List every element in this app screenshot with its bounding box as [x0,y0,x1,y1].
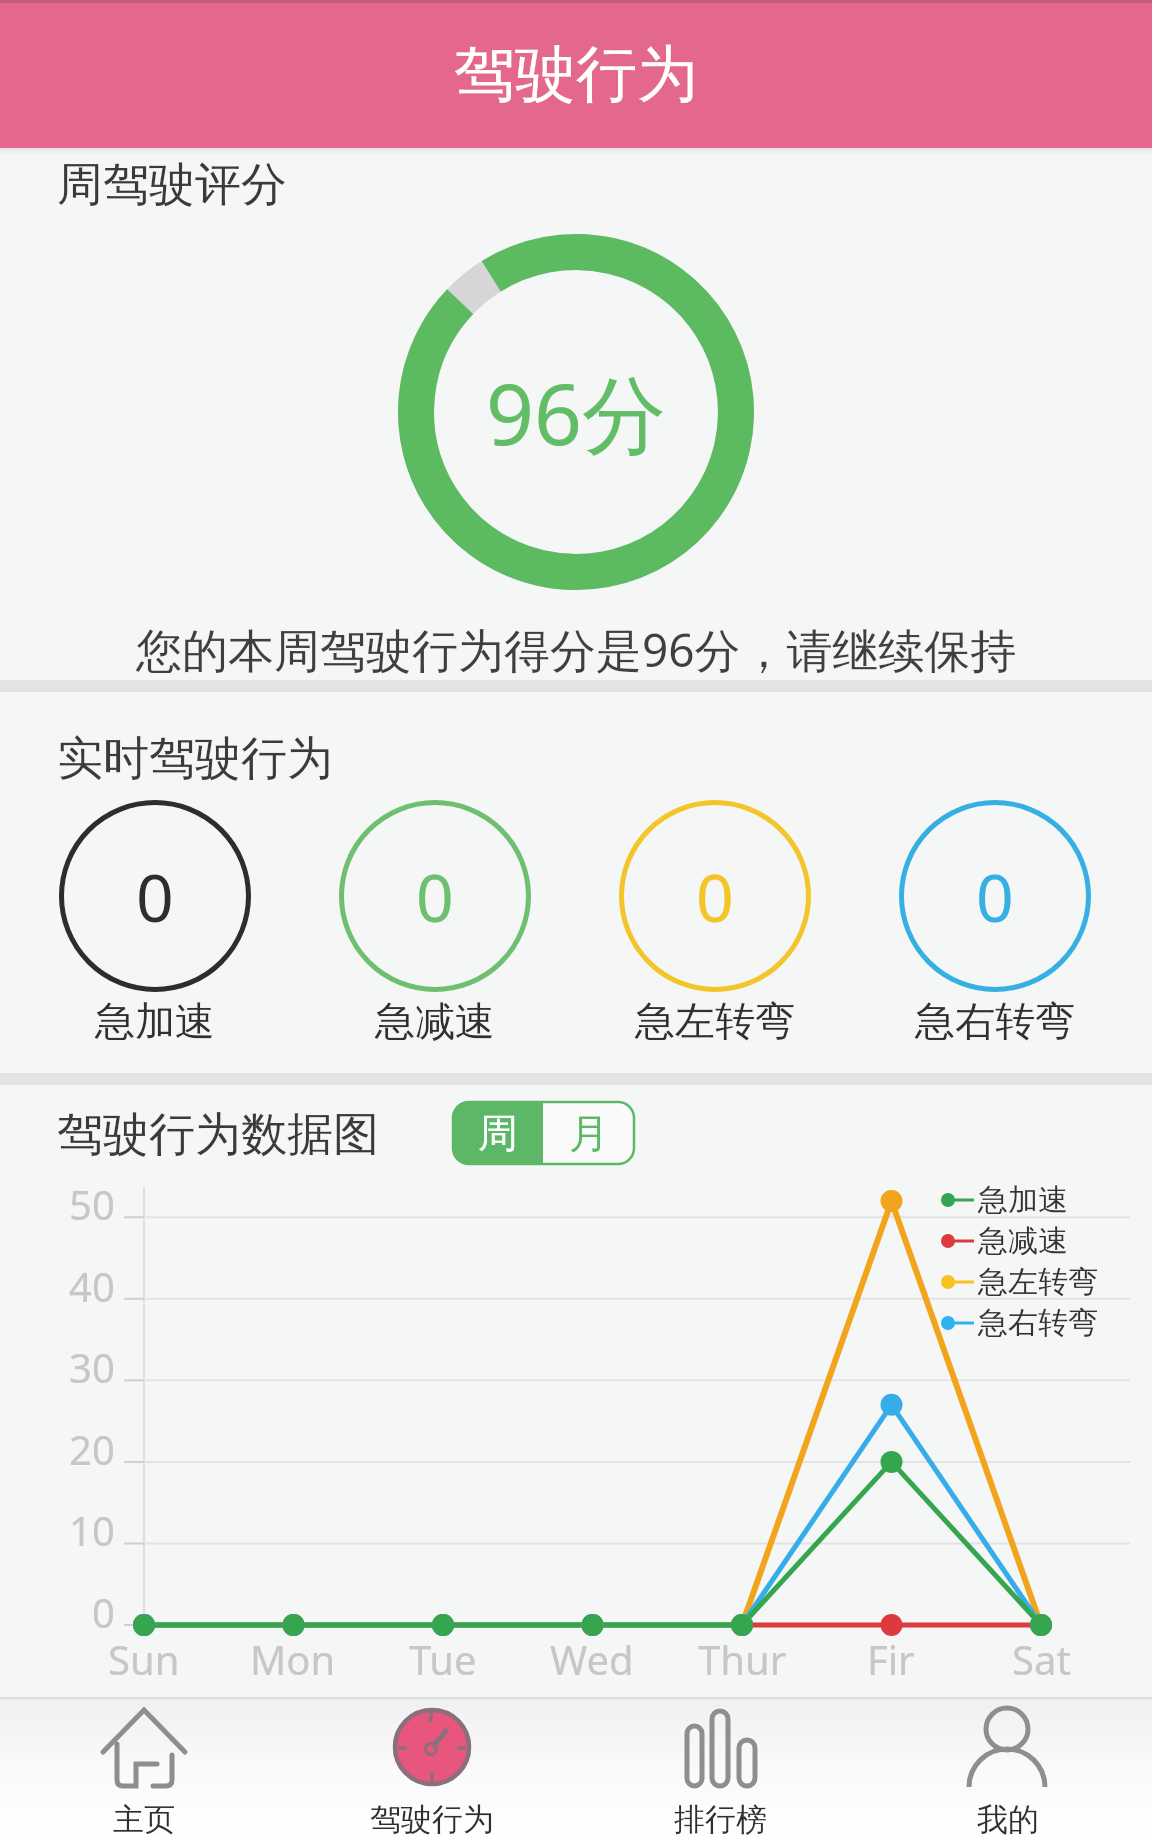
button[interactable]: 驾驶行为 [288,1697,576,1844]
staticText: 月 [569,1108,609,1158]
staticText: Tue [409,1632,477,1686]
staticText: Thur [698,1632,787,1686]
staticText: Sun [108,1632,180,1686]
staticText: 驾驶行为 [370,1800,494,1839]
button[interactable]: 我的 [864,1697,1152,1844]
button[interactable]: 周 [453,1102,543,1164]
staticText: 我的 [977,1800,1039,1839]
staticText: 96分 [486,355,667,470]
staticText: 急减速 [375,996,495,1046]
staticText: Mon [250,1632,336,1686]
staticText: 20 [69,1422,115,1476]
staticText: 实时驾驶行为 [57,730,333,788]
staticText: 40 [69,1259,115,1313]
staticText: 0 [92,1585,115,1639]
staticText: 排行榜 [674,1800,767,1839]
staticText: 30 [69,1340,115,1394]
staticText: Sat [1012,1632,1071,1686]
staticText: 10 [69,1503,115,1557]
staticText: 急左转弯 [635,996,795,1046]
staticText: 周驾驶评分 [57,156,287,214]
staticText: 0 [136,851,174,941]
staticText: 驾驶行为数据图 [57,1106,379,1164]
staticText: 急加速 [95,996,215,1046]
staticText: 急减速 [978,1222,1068,1260]
staticText: 急左转弯 [978,1263,1098,1301]
staticText: 0 [416,851,454,941]
staticText: 您的本周驾驶行为得分是96分，请继续保持 [136,618,1017,681]
staticText: 驾驶行为 [454,36,698,113]
staticText: 急右转弯 [915,996,1075,1046]
button[interactable]: 月 [543,1102,634,1164]
staticText: 急右转弯 [978,1304,1098,1342]
button[interactable]: 主页 [0,1697,288,1844]
staticText: 0 [696,851,734,941]
staticText: 急加速 [978,1181,1068,1219]
button[interactable]: 排行榜 [576,1697,864,1844]
staticText: Fir [867,1632,915,1686]
staticText: 50 [69,1177,115,1231]
staticText: Wed [550,1632,634,1686]
staticText: 0 [976,851,1014,941]
staticText: 主页 [113,1800,175,1839]
staticText: 周 [478,1108,518,1158]
